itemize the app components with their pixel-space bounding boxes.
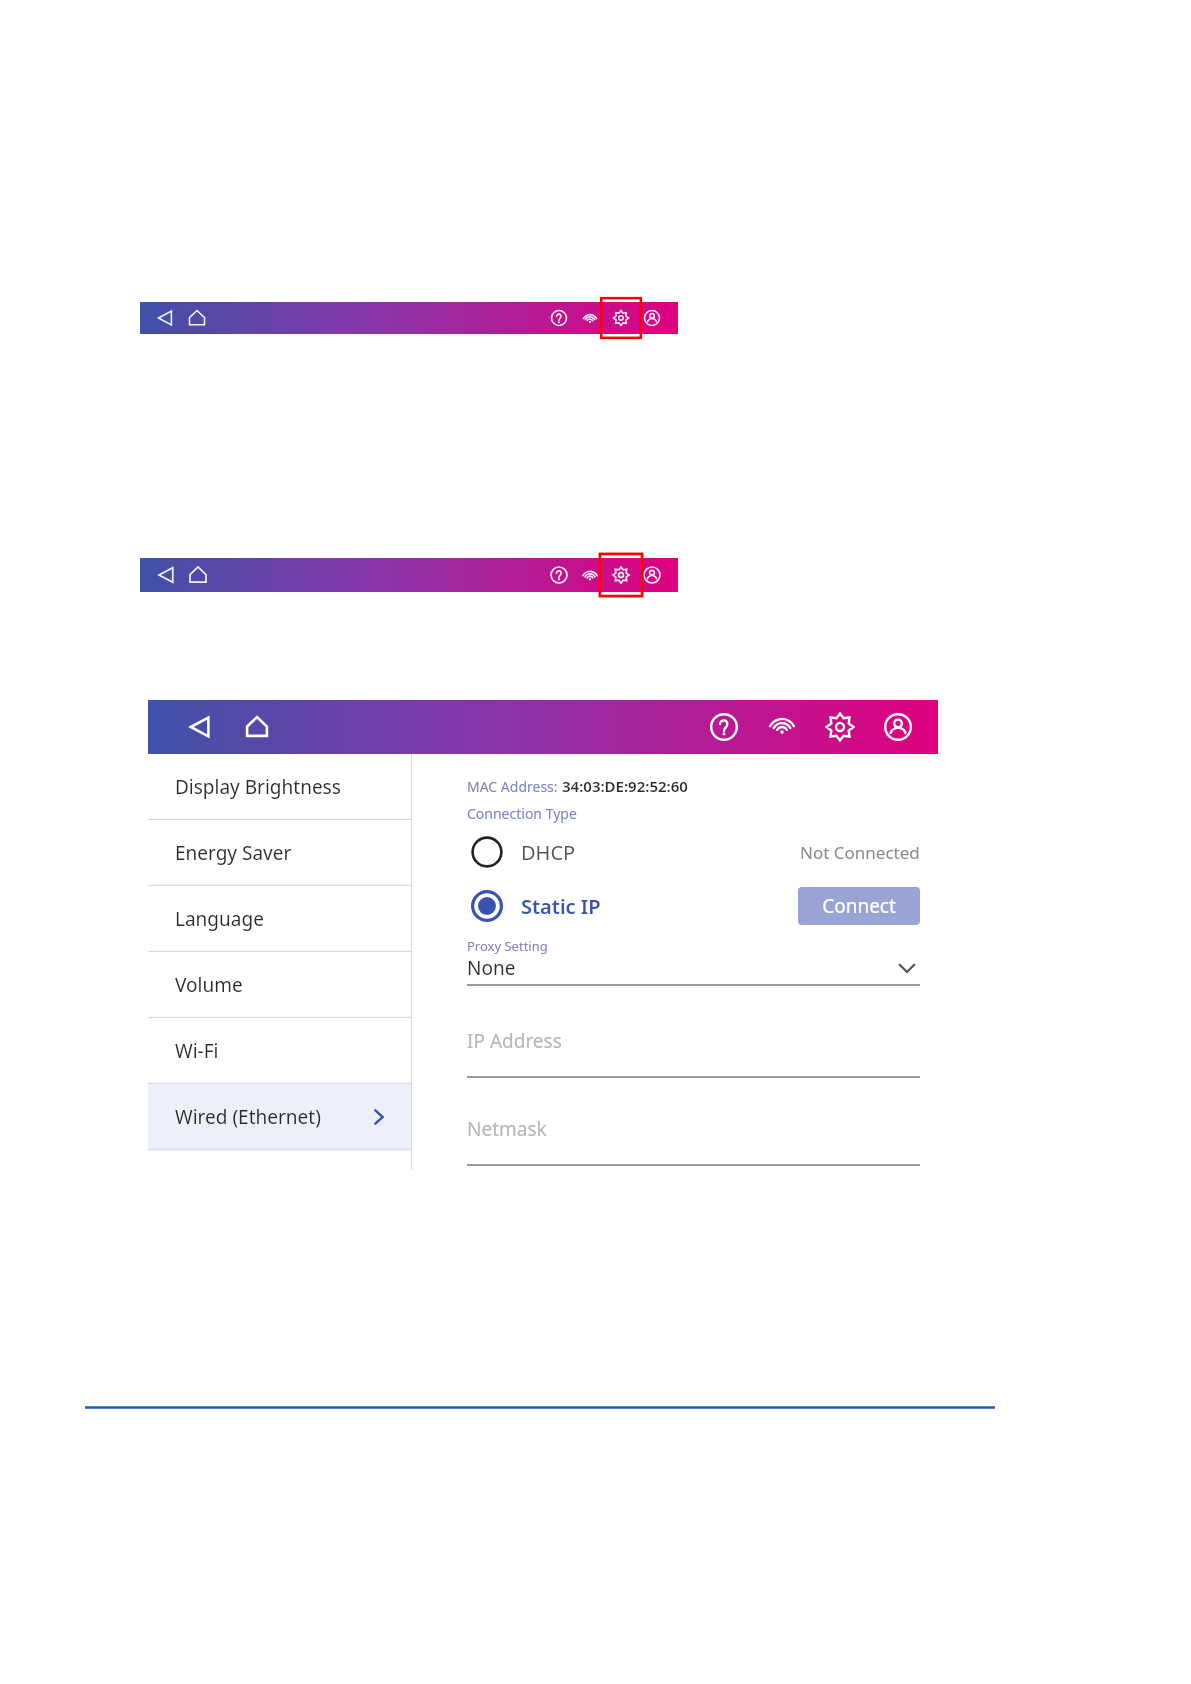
staticText: Wi-Fi (175, 1038, 219, 1064)
button[interactable]: Wired (Ethernet) (148, 1084, 411, 1150)
staticText: Display Brightness (175, 774, 341, 800)
staticText: Not Connected (800, 841, 920, 864)
staticText: Netmask (467, 1116, 547, 1142)
staticText: Wired (Ethernet) (175, 1104, 321, 1130)
button[interactable]: Display Brightness (148, 754, 411, 820)
staticText: 34:03:DE:92:52:60 (562, 776, 688, 796)
button[interactable]: Wi-Fi (148, 1018, 411, 1084)
button[interactable]: Static IP (467, 879, 928, 933)
button[interactable]: DHCP (467, 825, 928, 879)
staticText: Connection Type (467, 804, 577, 823)
button[interactable]: Account (874, 703, 922, 751)
button[interactable]: Help (700, 703, 748, 751)
button[interactable]: Home (234, 704, 280, 750)
staticText: Volume (175, 972, 243, 998)
staticText: Language (175, 906, 264, 932)
button[interactable]: Wi-Fi (758, 703, 806, 751)
button[interactable]: Back (178, 704, 224, 750)
staticText: Proxy Setting (467, 937, 548, 955)
button[interactable]: Settings (816, 703, 864, 751)
staticText: Static IP (521, 893, 601, 920)
staticText: MAC Address: (467, 777, 562, 796)
button[interactable]: Language (148, 886, 411, 952)
staticText: DHCP (521, 839, 576, 866)
staticText: Connect (822, 893, 896, 919)
button[interactable]: Energy Saver (148, 820, 411, 886)
button[interactable]: Volume (148, 952, 411, 1018)
staticText: None (467, 955, 516, 981)
staticText: IP Address (467, 1028, 562, 1054)
staticText: Energy Saver (175, 840, 292, 866)
button[interactable]: Connect (798, 887, 920, 925)
